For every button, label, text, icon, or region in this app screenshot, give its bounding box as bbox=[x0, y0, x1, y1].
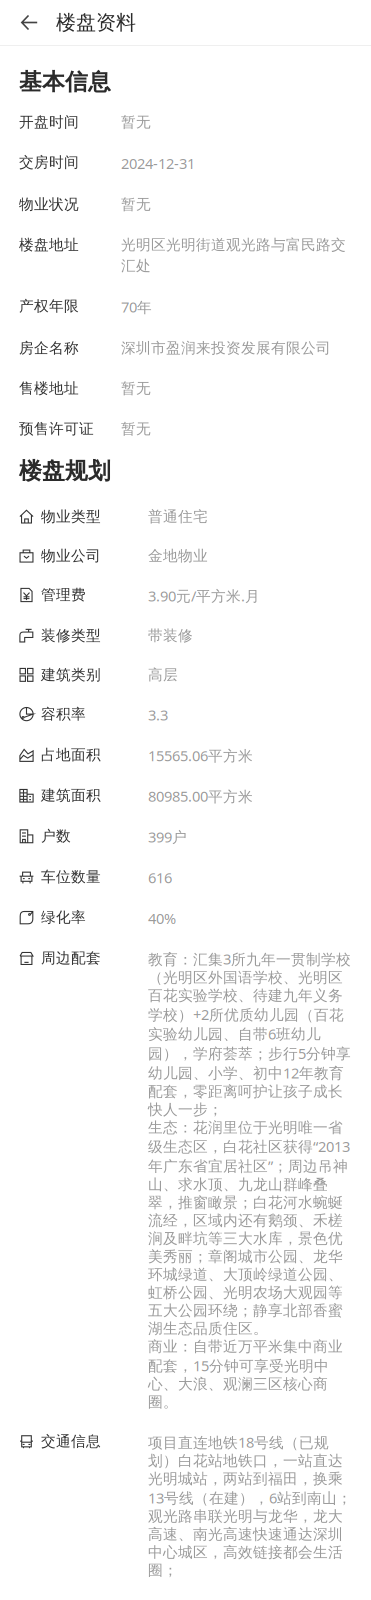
staticText: 楼盘规划 bbox=[19, 457, 111, 485]
staticText: 616 bbox=[148, 868, 172, 887]
staticText: 管理费 bbox=[41, 586, 86, 604]
staticText: 户数 bbox=[41, 827, 71, 845]
staticText: 项目直连地铁18号线（已规划）白花站地铁口，一站直达光明城站，两站到福田，换乘1… bbox=[148, 1432, 352, 1579]
staticText: 绿化率 bbox=[41, 908, 86, 926]
button[interactable]: 物业公司 bbox=[0, 536, 371, 575]
staticText: 暂无 bbox=[121, 420, 151, 438]
button[interactable]: 预售许可证 bbox=[0, 409, 371, 449]
staticText: 70年 bbox=[121, 297, 152, 317]
button[interactable]: 物业状况 bbox=[0, 184, 371, 224]
staticText: 2024-12-31 bbox=[121, 153, 195, 173]
staticText: 预售许可证 bbox=[19, 420, 94, 438]
staticText: 40% bbox=[148, 908, 176, 928]
button[interactable]: 容积率 bbox=[0, 694, 371, 735]
staticText: 教育：汇集3所九年一贯制学校（光明区外国语学校、光明区百花实验学校、待建九年义务… bbox=[148, 949, 351, 1411]
staticText: 建筑类别 bbox=[41, 666, 101, 684]
staticText: 建筑面积 bbox=[41, 786, 101, 804]
staticText: 物业类型 bbox=[41, 507, 101, 525]
staticText: 暂无 bbox=[121, 195, 151, 213]
button[interactable]: 户数 bbox=[0, 816, 371, 857]
staticText: 深圳市盈润来投资发展有限公司 bbox=[121, 339, 331, 357]
button[interactable]: 售楼地址 bbox=[0, 368, 371, 409]
staticText: 金地物业 bbox=[148, 547, 208, 565]
button[interactable]: 车位数量 bbox=[0, 857, 371, 898]
staticText: 物业公司 bbox=[41, 547, 101, 565]
button[interactable]: 交房时间 bbox=[0, 142, 371, 184]
button[interactable]: 产权年限 bbox=[0, 286, 371, 328]
staticText: 售楼地址 bbox=[19, 379, 79, 397]
staticText: 3.90元/平方米.月 bbox=[148, 586, 260, 605]
staticText: 楼盘地址 bbox=[19, 236, 79, 254]
staticText: 交房时间 bbox=[19, 153, 79, 171]
staticText: 3.3 bbox=[148, 705, 168, 725]
staticText: 普通住宅 bbox=[148, 507, 208, 525]
staticText: 占地面积 bbox=[41, 746, 101, 764]
button[interactable]: 楼盘地址 bbox=[0, 225, 371, 286]
staticText: 399户 bbox=[148, 827, 187, 847]
staticText: 周边配套 bbox=[41, 949, 101, 967]
button[interactable]: 管理费 bbox=[0, 575, 371, 616]
staticText: 光明区光明街道观光路与富民路交汇处 bbox=[121, 236, 346, 275]
staticText: 交通信息 bbox=[41, 1432, 101, 1450]
button[interactable]: 占地面积 bbox=[0, 735, 371, 776]
staticText: 容积率 bbox=[41, 705, 86, 723]
staticText: 基本信息 bbox=[19, 68, 111, 96]
button[interactable]: 建筑类别 bbox=[0, 655, 371, 694]
button[interactable]: 装修类型 bbox=[0, 616, 371, 655]
staticText: 产权年限 bbox=[19, 297, 79, 315]
staticText: 物业状况 bbox=[19, 195, 79, 213]
button[interactable]: Back bbox=[0, 4, 56, 40]
staticText: 房企名称 bbox=[19, 339, 79, 357]
staticText: 开盘时间 bbox=[19, 113, 79, 131]
staticText: 车位数量 bbox=[41, 868, 101, 886]
staticText: 暂无 bbox=[121, 113, 151, 131]
button[interactable]: 周边配套 bbox=[0, 939, 371, 1422]
staticText: 带装修 bbox=[148, 627, 193, 645]
button[interactable]: 物业类型 bbox=[0, 497, 371, 536]
staticText: 15565.06平方米 bbox=[148, 746, 253, 765]
button[interactable]: 房企名称 bbox=[0, 328, 371, 368]
button[interactable]: 交通信息 bbox=[0, 1422, 371, 1590]
button[interactable]: 绿化率 bbox=[0, 898, 371, 939]
button[interactable]: 建筑面积 bbox=[0, 776, 371, 816]
button[interactable]: 开盘时间 bbox=[0, 102, 371, 142]
staticText: 80985.00平方米 bbox=[148, 786, 253, 806]
staticText: 高层 bbox=[148, 666, 178, 684]
staticText: 暂无 bbox=[121, 379, 151, 397]
staticText: 装修类型 bbox=[41, 627, 101, 645]
staticText: 楼盘资料 bbox=[56, 10, 136, 35]
